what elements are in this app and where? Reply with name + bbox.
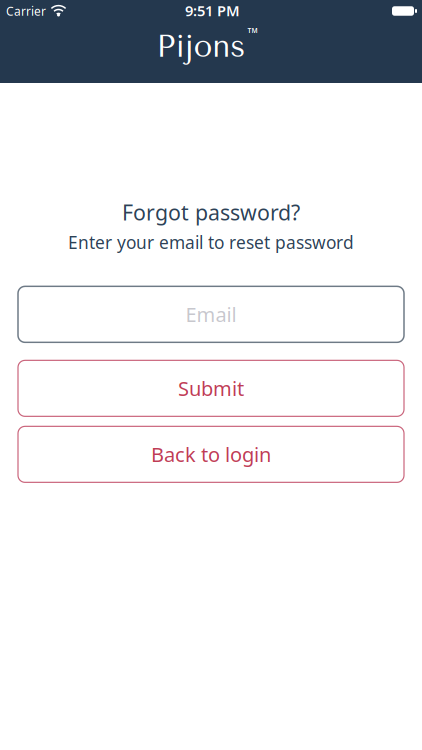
- button[interactable]: Back to login: [18, 426, 404, 482]
- button[interactable]: Submit: [18, 360, 404, 416]
- staticText: Email: [185, 301, 236, 328]
- staticText: TM: [247, 26, 257, 35]
- staticText: Submit: [178, 375, 244, 402]
- staticText: 9:51 PM: [185, 1, 240, 20]
- staticText: Forgot password?: [122, 198, 300, 226]
- staticText: Back to login: [151, 441, 271, 468]
- staticText: Enter your email to reset password: [68, 231, 354, 254]
- staticText: Carrier: [6, 3, 46, 19]
- staticText: Pijons: [156, 29, 245, 64]
- button[interactable]: Email text field: [18, 286, 404, 342]
